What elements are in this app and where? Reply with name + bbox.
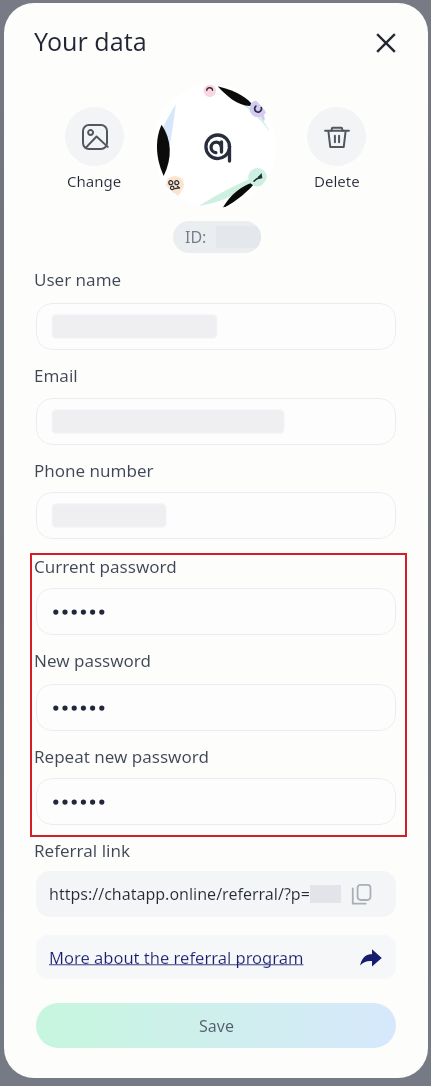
staticText: Referral link: [34, 839, 130, 862]
button[interactable]: Change: [45, 107, 144, 191]
button[interactable]: [36, 588, 396, 635]
staticText: Email: [34, 364, 78, 387]
staticText: More about the referral program: [49, 946, 304, 968]
button[interactable]: ID:: [173, 221, 261, 253]
staticText: Your data: [34, 24, 147, 58]
staticText: Delete: [314, 171, 360, 191]
staticText: Change: [67, 171, 122, 191]
button[interactable]: https://chatapp.online/referral/?p=: [36, 871, 396, 917]
button[interactable]: [36, 303, 396, 350]
button[interactable]: [36, 492, 396, 539]
button[interactable]: Delete: [287, 107, 386, 191]
staticText: Save: [199, 1015, 234, 1037]
other: Copy link: [350, 883, 373, 906]
staticText: User name: [34, 268, 122, 291]
button[interactable]: Close: [365, 22, 407, 64]
button[interactable]: Save: [36, 1003, 396, 1048]
button[interactable]: More about the referral program: [36, 935, 396, 979]
staticText: Repeat new password: [34, 745, 209, 768]
button[interactable]: [36, 778, 396, 825]
staticText: https://chatapp.online/referral/?p=: [49, 883, 310, 905]
button[interactable]: [36, 684, 396, 731]
button[interactable]: [36, 398, 396, 445]
staticText: ID:: [185, 226, 207, 248]
staticText: New password: [34, 649, 152, 672]
staticText: Current password: [34, 555, 177, 578]
staticText: Phone number: [34, 459, 154, 482]
